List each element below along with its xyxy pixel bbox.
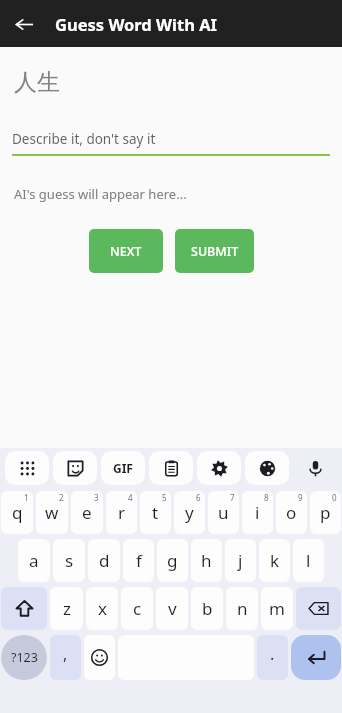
button[interactable]: o xyxy=(276,491,307,534)
button[interactable]: b xyxy=(191,587,223,630)
button[interactable]: Emoji xyxy=(84,635,115,680)
button[interactable]: l xyxy=(293,539,324,582)
staticText: 3 xyxy=(94,492,99,503)
button[interactable]: q xyxy=(1,491,33,534)
staticText: GIF xyxy=(113,460,133,476)
button[interactable]: c xyxy=(121,587,153,630)
button[interactable]: v xyxy=(156,587,188,630)
button[interactable]: Clipboard xyxy=(149,451,193,485)
button[interactable]: d xyxy=(88,539,120,582)
staticText: l xyxy=(306,549,311,572)
button[interactable]: ?123 xyxy=(1,635,47,680)
staticText: ?123 xyxy=(11,649,38,666)
button[interactable]: . xyxy=(257,635,288,680)
button[interactable]: Enter xyxy=(291,635,341,680)
staticText: 6 xyxy=(196,492,201,503)
staticText: s xyxy=(65,549,74,572)
staticText: , xyxy=(63,643,68,665)
button[interactable]: Theme xyxy=(245,451,289,485)
button[interactable]: a xyxy=(18,539,50,582)
staticText: u xyxy=(218,501,229,524)
staticText: c xyxy=(133,597,142,620)
button[interactable]: k xyxy=(259,539,290,582)
staticText: i xyxy=(255,501,260,524)
staticText: k xyxy=(270,549,280,572)
button[interactable]: NEXT xyxy=(89,229,163,273)
button[interactable]: Sticker xyxy=(53,451,97,485)
button[interactable]: Voice input xyxy=(293,451,337,485)
staticText: t xyxy=(152,501,159,524)
staticText: w xyxy=(45,501,59,524)
staticText: 0 xyxy=(332,492,337,503)
staticText: 7 xyxy=(230,492,235,503)
button[interactable]: e xyxy=(71,491,103,534)
staticText: o xyxy=(286,501,297,524)
staticText: 9 xyxy=(298,492,303,503)
button[interactable]: Settings xyxy=(197,451,241,485)
staticText: g xyxy=(167,549,178,572)
button[interactable]: , xyxy=(50,635,81,680)
staticText: q xyxy=(12,501,23,524)
staticText: j xyxy=(238,549,243,572)
button[interactable]: i xyxy=(242,491,273,534)
button[interactable]: g xyxy=(157,539,188,582)
button[interactable]: m xyxy=(261,587,293,630)
button[interactable]: GIF xyxy=(101,451,145,485)
button[interactable]: Backspace xyxy=(296,587,341,630)
staticText: y xyxy=(185,501,194,524)
staticText: NEXT xyxy=(110,243,142,260)
staticText: m xyxy=(269,597,285,620)
button[interactable]: j xyxy=(225,539,256,582)
button[interactable]: Describe it, don't say it xyxy=(12,128,330,150)
staticText: r xyxy=(118,501,126,524)
button[interactable]: y xyxy=(174,491,205,534)
staticText: f xyxy=(136,549,142,572)
staticText: p xyxy=(320,501,331,524)
button[interactable]: Apps xyxy=(5,451,49,485)
button[interactable]: h xyxy=(191,539,222,582)
staticText: . xyxy=(270,643,275,665)
staticText: n xyxy=(237,597,248,620)
staticText: 人生 xyxy=(14,68,60,97)
button[interactable]: x xyxy=(86,587,118,630)
staticText: 5 xyxy=(162,492,167,503)
staticText: z xyxy=(63,597,71,620)
staticText: v xyxy=(168,597,177,620)
staticText: 2 xyxy=(59,492,64,503)
staticText: d xyxy=(99,549,110,572)
button[interactable]: SUBMIT xyxy=(175,229,254,273)
staticText: 4 xyxy=(128,492,133,503)
staticText: AI's guess will appear here... xyxy=(14,185,187,203)
button[interactable]: r xyxy=(106,491,137,534)
button[interactable]: z xyxy=(50,587,83,630)
button[interactable]: Shift xyxy=(1,587,47,630)
staticText: SUBMIT xyxy=(191,243,239,260)
button[interactable]: f xyxy=(123,539,154,582)
staticText: x xyxy=(98,597,107,620)
button[interactable]: t xyxy=(140,491,171,534)
staticText: h xyxy=(201,549,212,572)
button[interactable]: n xyxy=(226,587,258,630)
staticText: e xyxy=(82,501,92,524)
staticText: Describe it, don't say it xyxy=(12,130,156,148)
button[interactable]: p xyxy=(310,491,341,534)
staticText: 1 xyxy=(24,492,29,503)
button[interactable]: u xyxy=(208,491,239,534)
staticText: a xyxy=(29,549,39,572)
staticText: Guess Word With AI xyxy=(55,13,217,35)
button[interactable]: Back xyxy=(5,5,43,43)
button[interactable]: w xyxy=(36,491,68,534)
staticText: 8 xyxy=(264,492,269,503)
button[interactable]: s xyxy=(53,539,85,582)
staticText: b xyxy=(202,597,213,620)
